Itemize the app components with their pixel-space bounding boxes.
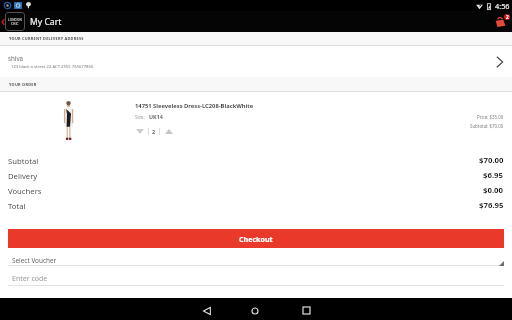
staticText: UK14 [149,113,163,120]
staticText: Select Voucher [12,256,57,265]
button[interactable]: Shopping bag [490,11,512,32]
button[interactable]: Home [240,301,270,320]
staticText: $70.00 [479,155,504,166]
staticText: Checkout [239,234,273,244]
staticText: $0.00 [483,185,504,196]
button[interactable]: Increase quantity [164,127,173,136]
button[interactable]: Decrease quantity [135,127,144,136]
staticText: LONDON [8,18,22,22]
staticText: Subtotal: $70.00 [470,123,504,129]
staticText: $76.95 [479,200,504,211]
staticText: My Cart [30,16,62,28]
staticText: 2 [506,14,509,20]
button[interactable]: Checkout [8,229,504,248]
staticText: Total [8,201,26,211]
button[interactable]: Recent apps [291,301,321,320]
staticText: CHIC [11,22,19,26]
staticText: 4:56 [495,1,510,11]
staticText: Delivery [8,171,38,181]
button[interactable]: shiva [0,46,512,77]
button[interactable]: Back to shop [0,12,25,31]
button[interactable]: Back [192,301,222,320]
staticText: YOUR ORDER [9,82,37,87]
staticText: shiva [8,54,23,62]
staticText: 123 black a street 22 ACT 2555 765677866 [11,64,94,70]
staticText: Price: $35.00 [477,114,504,120]
staticText: YOUR CURRENT DELIVERY ADDRESS [9,36,84,41]
staticText: Subtotal [8,156,39,166]
staticText: 14751 Sleeveless Dress-LC208-BlackWhite [135,102,254,110]
staticText: Enter code [12,274,48,284]
staticText: Size: [135,114,145,120]
staticText: 2 [152,128,156,135]
staticText: $6.95 [483,170,504,181]
button[interactable]: Select Voucher [8,254,504,266]
staticText: Vouchers [8,186,42,196]
button[interactable]: Enter code [8,273,504,286]
